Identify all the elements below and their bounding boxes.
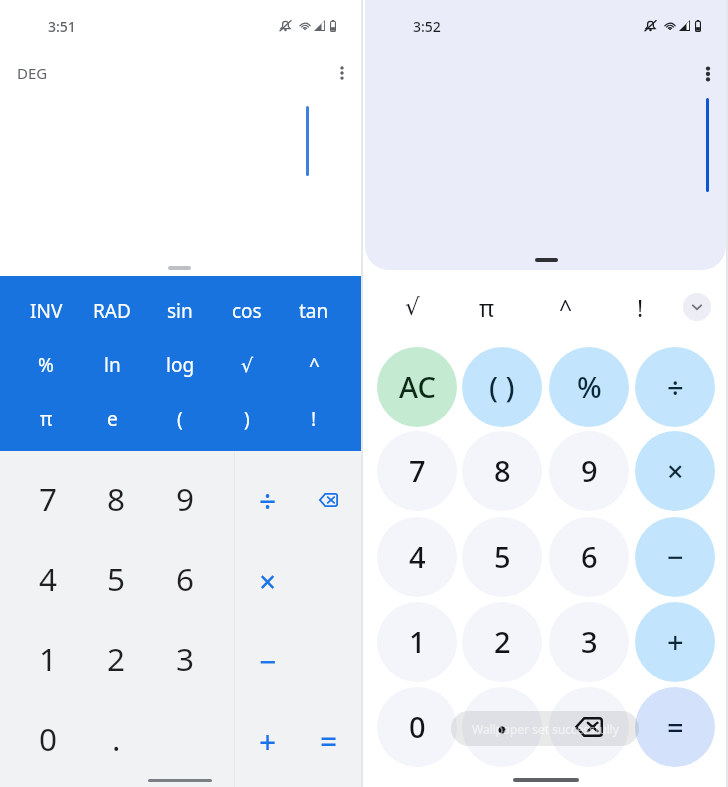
button[interactable]: 7 [377, 431, 457, 511]
staticText: AC [399, 367, 436, 406]
staticText: × [667, 451, 684, 490]
button[interactable]: ! [608, 282, 672, 332]
button[interactable]: More options [324, 55, 360, 91]
button[interactable]: 2 [82, 618, 150, 698]
staticText: 1 [39, 637, 58, 680]
button[interactable]: 9 [151, 458, 219, 538]
staticText: ( ) [489, 367, 515, 406]
button[interactable]: 3 [549, 602, 629, 682]
staticText: 3:52 [413, 17, 441, 36]
button[interactable] [462, 687, 542, 767]
staticText: % [577, 367, 602, 406]
button[interactable]: RAD [79, 284, 145, 338]
button[interactable]: 5 [82, 538, 150, 618]
button[interactable]: ln [79, 338, 145, 392]
button[interactable]: ( ) [462, 347, 542, 427]
button[interactable]: 7 [14, 458, 82, 538]
button[interactable]: Collapse keypad [683, 293, 711, 321]
button[interactable]: π [13, 392, 79, 446]
button[interactable]: √ [214, 338, 280, 392]
button[interactable]: log [147, 338, 213, 392]
button[interactable]: 5 [462, 517, 542, 597]
staticText: 3:51 [48, 17, 76, 36]
button[interactable]: 9 [549, 431, 629, 511]
staticText: DEG [17, 63, 48, 83]
staticText: ^ [559, 292, 573, 323]
button[interactable]: sin [147, 284, 213, 338]
staticText: ÷ [667, 367, 684, 406]
staticText: sin [167, 298, 193, 324]
button[interactable]: tan [281, 284, 347, 338]
staticText: 6 [581, 537, 598, 576]
button[interactable]: ( [147, 392, 213, 446]
button[interactable]: ^ [534, 282, 598, 332]
button[interactable]: × [635, 431, 715, 511]
button[interactable]: % [13, 338, 79, 392]
button[interactable]: ÷ [635, 347, 715, 427]
staticText: 5 [107, 557, 126, 600]
button[interactable]: Backspace [298, 460, 358, 540]
staticText: ^ [309, 352, 320, 378]
button[interactable]: 1 [377, 602, 457, 682]
button[interactable]: 8 [82, 458, 150, 538]
staticText: − [667, 537, 684, 576]
staticText: 4 [409, 537, 426, 576]
button[interactable]: . [82, 698, 150, 778]
button[interactable]: − [235, 621, 301, 701]
staticText: = [320, 721, 338, 762]
staticText: 4 [39, 557, 58, 600]
staticText: 9 [581, 451, 598, 490]
staticText: + [667, 622, 684, 661]
button[interactable]: 3 [151, 618, 219, 698]
button[interactable]: = [635, 687, 715, 767]
staticText: cos [232, 298, 262, 324]
staticText: Wallpaper set successfully [472, 721, 619, 737]
staticText: ! [311, 406, 317, 432]
staticText: − [259, 641, 277, 682]
staticText: tan [299, 298, 329, 324]
staticText: √ [405, 294, 420, 321]
button[interactable]: e [79, 392, 145, 446]
button[interactable]: 1 [14, 618, 82, 698]
button[interactable]: + [635, 602, 715, 682]
button[interactable]: AC [377, 347, 457, 427]
staticText: ln [104, 352, 121, 378]
button[interactable]: INV [13, 284, 79, 338]
button[interactable]: 6 [151, 538, 219, 618]
button[interactable]: ^ [281, 338, 347, 392]
staticText: RAD [93, 298, 131, 324]
button[interactable]: − [635, 517, 715, 597]
button[interactable]: 8 [462, 431, 542, 511]
staticText: √ [241, 354, 254, 376]
button[interactable]: 0 [14, 698, 82, 778]
button[interactable]: + [235, 701, 301, 781]
button[interactable]: 4 [377, 517, 457, 597]
button[interactable]: More options [690, 56, 726, 92]
staticText: 2 [494, 622, 511, 661]
staticText: . [112, 717, 121, 760]
button[interactable]: √ [380, 282, 444, 332]
button[interactable]: 4 [14, 538, 82, 618]
button[interactable]: 0 [377, 687, 457, 767]
staticText: 0 [409, 707, 426, 746]
staticText: 3 [581, 622, 598, 661]
button[interactable]: ÷ [235, 461, 301, 541]
staticText: ) [244, 406, 250, 432]
button[interactable]: = [299, 701, 359, 781]
staticText: 8 [494, 451, 511, 490]
button[interactable]: ) [214, 392, 280, 446]
button[interactable]: DEG [2, 56, 62, 90]
button[interactable]: Backspace [549, 687, 629, 767]
button[interactable]: π [455, 282, 519, 332]
button[interactable]: % [549, 347, 629, 427]
staticText: 3 [176, 637, 195, 680]
button[interactable]: cos [214, 284, 280, 338]
button[interactable]: × [235, 541, 301, 621]
staticText: 8 [107, 477, 126, 520]
button[interactable]: 6 [549, 517, 629, 597]
button[interactable]: ! [281, 392, 347, 446]
button[interactable]: 2 [462, 602, 542, 682]
staticText: 9 [176, 477, 195, 520]
staticText: ÷ [259, 481, 277, 522]
staticText: e [107, 406, 118, 432]
